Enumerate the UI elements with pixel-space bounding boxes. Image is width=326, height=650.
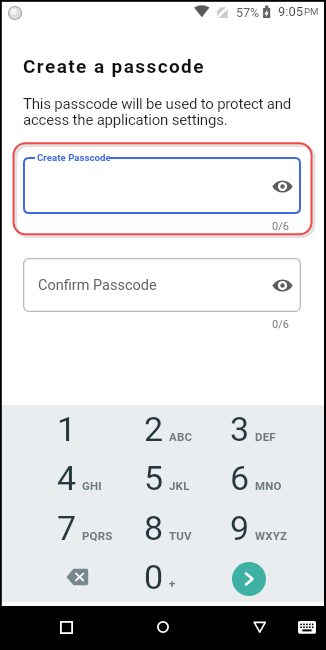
button[interactable]: Recent apps [44, 605, 88, 649]
staticText: Create a passcode [23, 55, 205, 77]
button[interactable]: 3 [197, 404, 283, 453]
staticText: 57% [236, 5, 260, 20]
button[interactable]: Delete [34, 552, 120, 601]
staticText: PQRS [82, 529, 132, 542]
staticText: + [169, 577, 199, 590]
staticText: 2 [144, 409, 164, 449]
staticText: 0/6 [23, 220, 289, 233]
button[interactable]: Toggle passcode visibility [268, 172, 296, 200]
button[interactable]: Back [238, 605, 282, 649]
button[interactable]: 8 [111, 503, 197, 552]
button[interactable]: Submit passcode [232, 562, 266, 596]
staticText: 5 [144, 458, 164, 498]
button[interactable]: 2 [111, 404, 197, 453]
staticText: 4 [57, 458, 77, 498]
staticText: 0 [144, 557, 164, 597]
staticText: MNO [255, 479, 305, 492]
staticText: 3 [230, 409, 250, 449]
button[interactable]: Home [141, 605, 185, 649]
button[interactable]: 4 [24, 453, 110, 502]
button[interactable]: Keyboard [285, 605, 326, 649]
button[interactable]: 1 [24, 404, 110, 453]
staticText: Confirm Passcode [38, 277, 157, 294]
button[interactable]: 6 [197, 453, 283, 502]
staticText: 9:05 [278, 4, 304, 19]
button[interactable]: 0 [111, 552, 197, 601]
button[interactable]: 9 [197, 503, 283, 552]
staticText: TUV [169, 529, 219, 542]
staticText: Create Passcode [37, 152, 111, 163]
staticText: ABC [169, 430, 219, 443]
button[interactable]: Toggle passcode visibility [268, 271, 296, 299]
staticText: GHI [82, 479, 132, 492]
button[interactable]: 5 [111, 453, 197, 502]
staticText: 1 [57, 409, 77, 449]
staticText: PM [304, 6, 319, 17]
staticText: DEF [255, 430, 305, 443]
staticText: WXYZ [255, 529, 305, 542]
button[interactable]: Confirm Passcode [23, 258, 301, 312]
staticText: 0/6 [23, 318, 289, 331]
button[interactable]: Create Passcode [23, 157, 301, 214]
staticText: This passcode will be used to protect an… [23, 95, 292, 128]
staticText: JKL [169, 479, 219, 492]
staticText: 8 [144, 508, 164, 548]
button[interactable]: 7 [24, 503, 110, 552]
staticText: 7 [57, 508, 77, 548]
staticText: 9 [230, 508, 250, 548]
staticText: 6 [230, 458, 250, 498]
